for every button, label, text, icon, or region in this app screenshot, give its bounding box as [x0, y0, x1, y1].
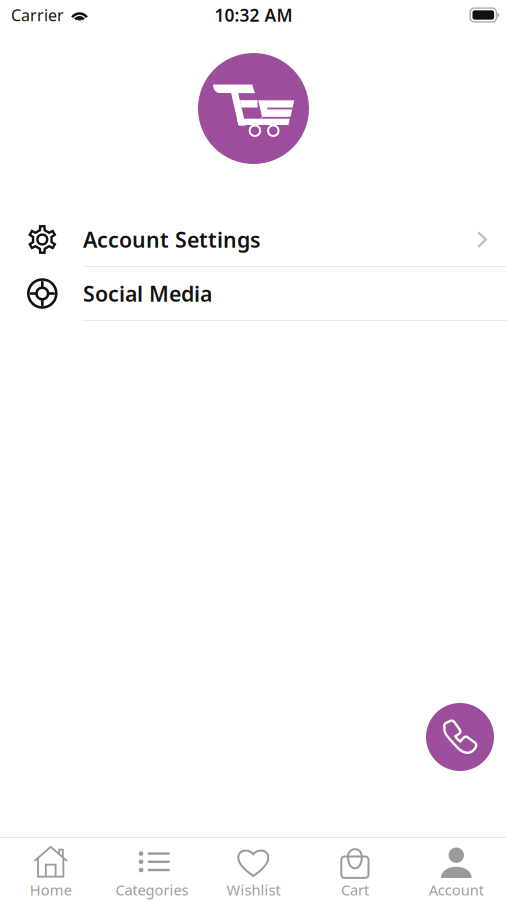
button[interactable]: Social Media [0, 267, 507, 321]
staticText: Home [30, 880, 72, 899]
staticText: Account [429, 880, 484, 899]
button[interactable]: Call [426, 703, 494, 771]
staticText: Account Settings [83, 225, 261, 254]
button[interactable]: Wishlist [203, 846, 304, 899]
staticText: Cart [341, 880, 369, 899]
staticText: Wishlist [226, 880, 280, 899]
button[interactable]: Categories [101, 846, 203, 899]
button[interactable]: Home [0, 846, 101, 899]
button[interactable]: Account [406, 846, 507, 899]
staticText: Social Media [83, 279, 212, 308]
staticText: Categories [116, 880, 189, 899]
staticText: Carrier [11, 4, 64, 26]
button[interactable]: Account Settings [0, 213, 507, 267]
button[interactable]: Cart [304, 846, 406, 899]
staticText: 10:32 AM [214, 3, 292, 26]
